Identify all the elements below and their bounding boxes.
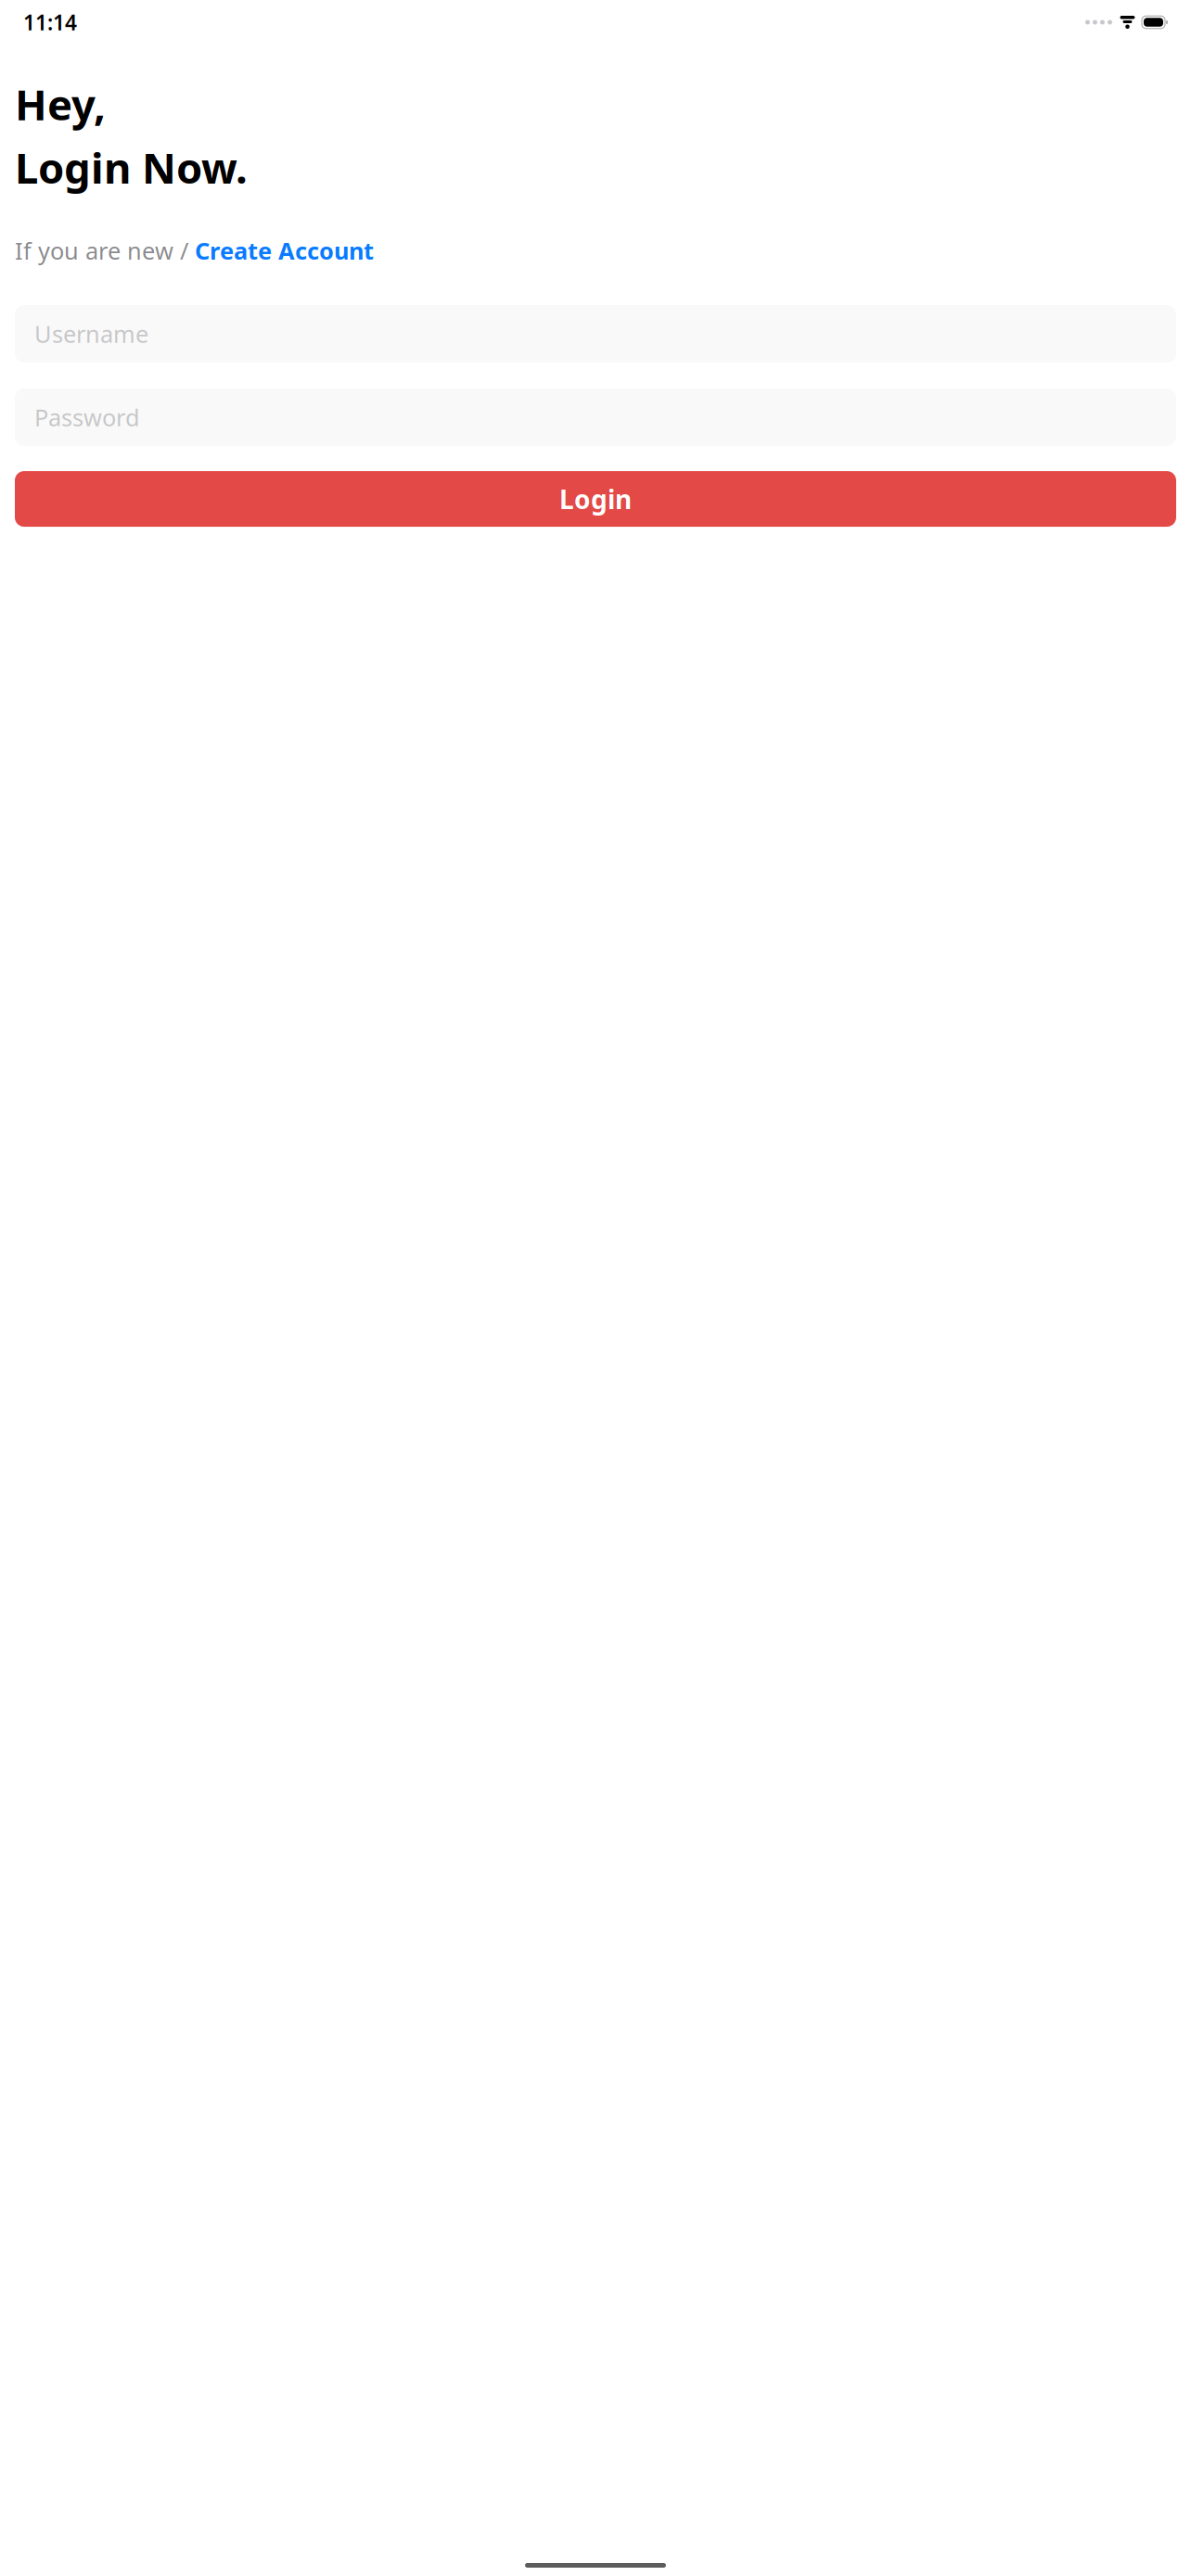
staticText: If you are new / <box>15 235 195 266</box>
staticText: Create Account <box>195 235 374 266</box>
staticText: Login <box>559 482 632 516</box>
button[interactable]: Create Account <box>195 235 374 266</box>
staticText: Login Now. <box>15 139 248 195</box>
button[interactable]: Password <box>15 389 1176 446</box>
button[interactable]: Username <box>15 305 1176 363</box>
staticText: Password <box>34 402 140 433</box>
staticText: Username <box>34 318 148 349</box>
staticText: Hey, <box>15 76 106 132</box>
staticText: 11:14 <box>23 8 77 36</box>
button[interactable]: Login <box>15 471 1176 527</box>
